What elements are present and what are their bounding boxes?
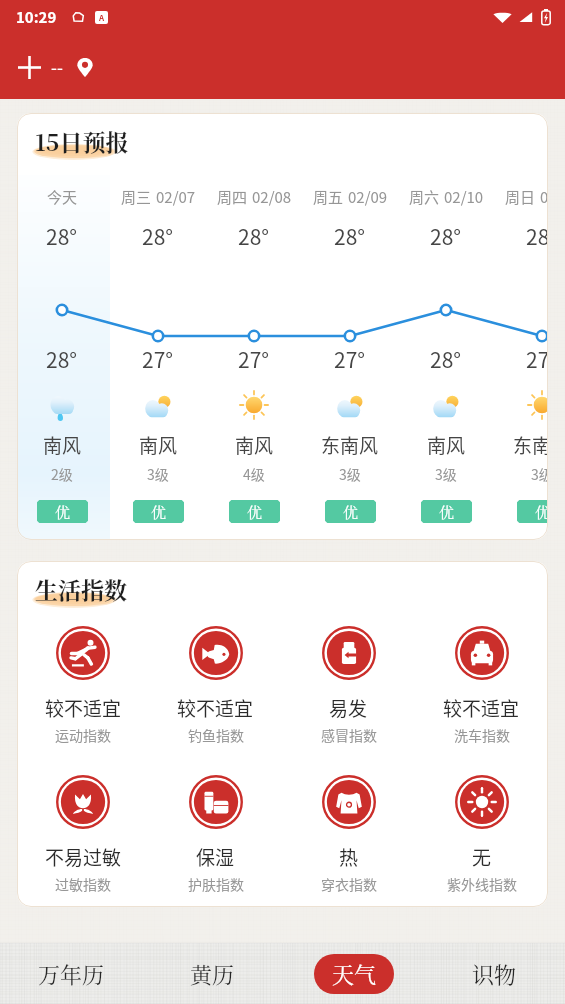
button[interactable]: 今天 (17, 113, 110, 540)
staticText: 优 (439, 501, 455, 523)
staticText: 无 (472, 843, 492, 871)
staticText: 优 (535, 501, 548, 523)
staticText: 穿衣指数 (321, 874, 377, 894)
staticText: 02/08 (252, 186, 292, 208)
staticText: 东南风 (513, 431, 548, 459)
staticText: 优 (247, 501, 263, 523)
staticText: 02/09 (348, 186, 388, 208)
staticText: 南风 (43, 431, 82, 459)
button[interactable]: Add city (12, 50, 46, 84)
staticText: 东南风 (321, 431, 379, 459)
staticText: 优 (343, 501, 359, 523)
staticText: 02/07 (156, 186, 196, 208)
staticText: A (99, 12, 105, 24)
staticText: 优 (55, 501, 71, 523)
staticText: 周日 (505, 186, 536, 208)
staticText: 护肤指数 (188, 874, 244, 894)
staticText: 钓鱼指数 (188, 725, 244, 745)
staticText: 紫外线指数 (447, 874, 517, 894)
staticText: 南风 (427, 431, 466, 459)
staticText: 3级 (531, 464, 548, 484)
staticText: 感冒指数 (321, 725, 377, 745)
staticText: 4级 (243, 464, 265, 484)
staticText: -- (51, 54, 63, 79)
staticText: 优 (151, 501, 167, 523)
staticText: 较不适宜 (45, 694, 122, 722)
staticText: 2级 (51, 464, 73, 484)
staticText: 周四 (217, 186, 248, 208)
button[interactable]: 周六 (398, 113, 494, 540)
staticText: 识物 (472, 958, 517, 990)
staticText: 28° (142, 221, 174, 251)
staticText: 3级 (339, 464, 361, 484)
button[interactable]: 较不适宜 (17, 625, 149, 745)
staticText: 较不适宜 (177, 694, 254, 722)
staticText: 27° (526, 344, 548, 374)
staticText: 南风 (235, 431, 274, 459)
staticText: 28° (238, 221, 270, 251)
staticText: 28° (430, 344, 462, 374)
button[interactable]: 万年历 (0, 943, 142, 1004)
staticText: 保湿 (196, 843, 235, 871)
staticText: 南风 (139, 431, 178, 459)
button[interactable]: 周三 (110, 113, 206, 540)
staticText: 28° (46, 221, 78, 251)
staticText: 15日预报 (35, 125, 129, 158)
staticText: 天气 (332, 958, 377, 990)
button[interactable]: 无 (415, 774, 548, 894)
button[interactable]: 周日 (494, 113, 548, 540)
staticText: 27° (142, 344, 174, 374)
button[interactable]: 识物 (424, 943, 565, 1004)
button[interactable]: 周四 (206, 113, 302, 540)
staticText: 较不适宜 (443, 694, 520, 722)
staticText: 02/10 (444, 186, 484, 208)
staticText: 黄历 (190, 958, 235, 990)
button[interactable]: 较不适宜 (149, 625, 282, 745)
staticText: 3级 (147, 464, 169, 484)
staticText: 周三 (121, 186, 152, 208)
staticText: 运动指数 (55, 725, 111, 745)
button[interactable]: 热 (282, 774, 415, 894)
staticText: 3级 (435, 464, 457, 484)
staticText: 28° (334, 221, 366, 251)
staticText: 洗车指数 (454, 725, 510, 745)
staticText: 过敏指数 (55, 874, 111, 894)
staticText: 今天 (47, 186, 78, 208)
button[interactable]: 保湿 (149, 774, 282, 894)
staticText: 28° (430, 221, 462, 251)
button[interactable]: 天气 (283, 943, 424, 1004)
staticText: 27° (334, 344, 366, 374)
staticText: 10:29 (16, 6, 57, 28)
staticText: 万年历 (38, 958, 105, 990)
staticText: 周五 (313, 186, 344, 208)
button[interactable]: 黄历 (142, 943, 283, 1004)
staticText: 02/11 (540, 186, 548, 208)
staticText: 不易过敏 (45, 843, 122, 871)
button[interactable]: 不易过敏 (17, 774, 149, 894)
button[interactable]: 周五 (302, 113, 398, 540)
staticText: 28° (46, 344, 78, 374)
button[interactable]: 较不适宜 (415, 625, 548, 745)
staticText: 生活指数 (35, 573, 127, 606)
staticText: 周六 (409, 186, 440, 208)
button[interactable]: 易发 (282, 625, 415, 745)
staticText: 27° (238, 344, 270, 374)
staticText: 热 (339, 843, 359, 871)
button[interactable]: Location (69, 51, 101, 83)
staticText: 易发 (329, 694, 368, 722)
staticText: 28° (526, 221, 548, 251)
